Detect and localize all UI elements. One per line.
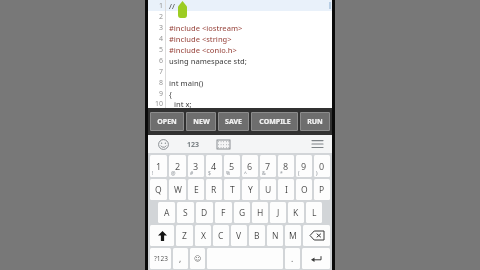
staticText: 4 — [158, 34, 163, 44]
staticText: Y — [248, 184, 253, 196]
staticText: V — [236, 230, 242, 242]
button[interactable]: W — [169, 179, 186, 200]
staticText: 1 — [158, 1, 163, 11]
button[interactable]: COMPILE — [251, 112, 298, 131]
button[interactable]: D — [196, 202, 213, 223]
staticText: ) — [316, 170, 318, 177]
button[interactable]: T — [224, 179, 240, 200]
staticText: C — [218, 230, 224, 242]
staticText: K — [293, 207, 299, 219]
staticText: { — [169, 89, 172, 99]
staticText: F — [221, 207, 226, 219]
button[interactable]: 9 — [296, 155, 312, 177]
staticText: int x; — [174, 99, 192, 108]
staticText: 8 — [158, 78, 163, 88]
button[interactable]: M — [285, 225, 301, 246]
button[interactable]: 4 — [206, 155, 222, 177]
button[interactable]: Switch keyboard — [215, 136, 231, 152]
button[interactable]: N — [267, 225, 283, 246]
button[interactable]: 2 — [169, 155, 186, 177]
staticText: 6 — [158, 56, 163, 66]
button[interactable]: Z — [176, 225, 193, 246]
button[interactable]: 0 — [314, 155, 330, 177]
button[interactable]: ☺ — [190, 248, 205, 269]
button[interactable]: ?123 — [150, 248, 171, 269]
staticText: $ — [208, 170, 211, 177]
button[interactable]: A — [158, 202, 175, 223]
staticText: , — [179, 253, 182, 265]
button[interactable]: Shift — [150, 225, 174, 246]
staticText: T — [230, 184, 235, 196]
button[interactable]: SAVE — [218, 112, 249, 131]
button[interactable]: 7 — [260, 155, 276, 177]
button[interactable]: Enter — [302, 248, 330, 269]
button[interactable]: L — [306, 202, 322, 223]
button[interactable]: 123 — [185, 138, 202, 151]
staticText: @ — [171, 170, 176, 177]
button[interactable]: , — [173, 248, 188, 269]
button[interactable]: Backspace — [303, 225, 330, 246]
staticText: ! — [152, 170, 154, 177]
staticText: #include <conio.h> — [169, 45, 237, 55]
button[interactable]: Emoji — [155, 136, 171, 152]
button[interactable]: . — [285, 248, 300, 269]
staticText: 8 — [283, 160, 289, 172]
staticText: NEW — [193, 117, 210, 127]
button[interactable]: 5 — [224, 155, 240, 177]
button[interactable]: U — [260, 179, 276, 200]
button[interactable]: 3 — [188, 155, 204, 177]
staticText: #include <iostream> — [169, 23, 243, 33]
staticText: 0 — [319, 160, 325, 172]
other: Text selection handle — [178, 1, 187, 18]
staticText: 9 — [158, 89, 163, 99]
staticText: 1 — [156, 160, 162, 172]
staticText: ☺ — [194, 255, 202, 263]
button[interactable]: G — [234, 202, 250, 223]
staticText: // — [169, 1, 175, 11]
button[interactable]: H — [252, 202, 268, 223]
button[interactable]: NEW — [186, 112, 216, 131]
staticText: 10 — [154, 99, 163, 108]
staticText: U — [265, 184, 272, 196]
button[interactable]: I — [278, 179, 294, 200]
button[interactable]: R — [206, 179, 222, 200]
button[interactable]: P — [314, 179, 330, 200]
button[interactable]: O — [296, 179, 312, 200]
staticText: 4 — [211, 160, 217, 172]
button[interactable]: B — [249, 225, 265, 246]
button[interactable]: E — [188, 179, 204, 200]
staticText: 123 — [187, 140, 200, 150]
staticText: RUN — [307, 117, 323, 127]
button[interactable]: X — [195, 225, 211, 246]
button[interactable]: RUN — [300, 112, 330, 131]
button[interactable]: C — [213, 225, 229, 246]
button[interactable]: J — [270, 202, 286, 223]
staticText: % — [226, 170, 231, 177]
button[interactable]: 1 — [150, 155, 167, 177]
staticText: W — [174, 184, 182, 196]
button[interactable]: Keyboard menu — [309, 136, 325, 152]
staticText: 3 — [193, 160, 199, 172]
button[interactable]: S — [177, 202, 194, 223]
staticText: P — [319, 184, 325, 196]
staticText: . — [291, 253, 294, 265]
staticText: int main() — [169, 78, 204, 88]
staticText: ( — [298, 170, 300, 177]
staticText: S — [183, 207, 188, 219]
button[interactable]: Y — [242, 179, 258, 200]
button[interactable]: Q — [150, 179, 167, 200]
staticText: 5 — [158, 45, 163, 55]
button[interactable]: F — [215, 202, 232, 223]
button[interactable]: OPEN — [150, 112, 184, 131]
button[interactable]: K — [288, 202, 304, 223]
staticText: Z — [182, 230, 187, 242]
staticText: Q — [155, 184, 162, 196]
staticText: X — [201, 230, 206, 242]
staticText: H — [257, 207, 264, 219]
button[interactable]: 6 — [242, 155, 258, 177]
staticText: ?123 — [154, 254, 168, 263]
staticText: M — [289, 230, 297, 242]
button[interactable]: V — [231, 225, 247, 246]
button[interactable]: 8 — [278, 155, 294, 177]
